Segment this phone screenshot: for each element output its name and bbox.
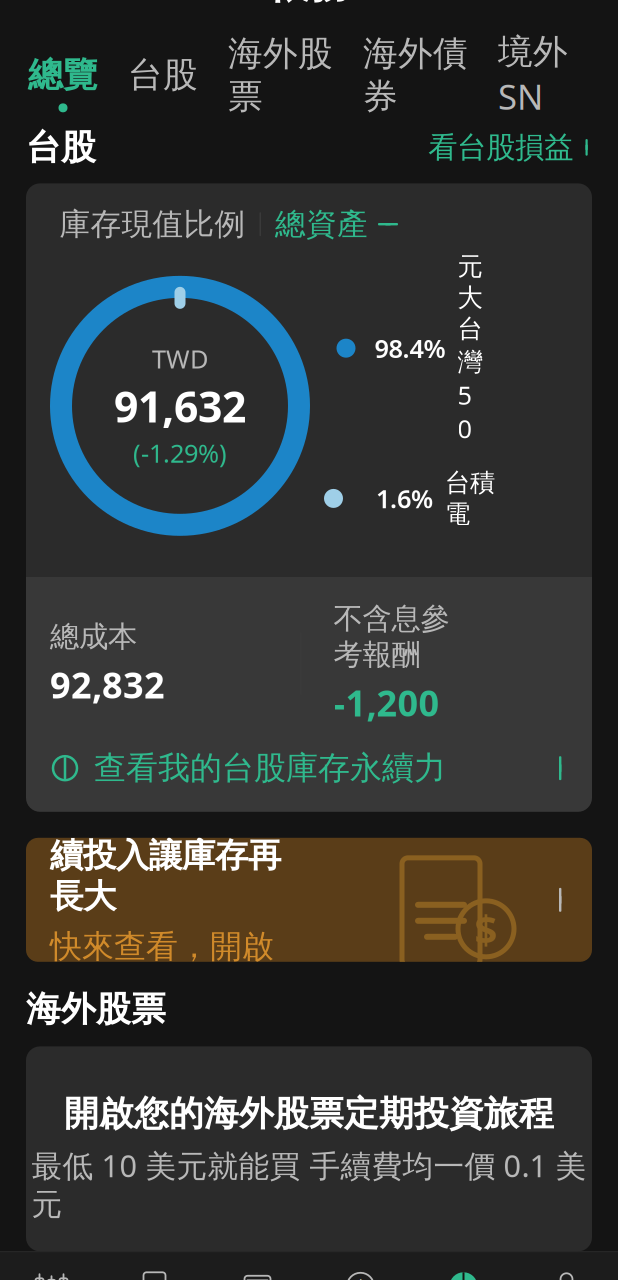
staticText: 快來查看，開啟複利計畫 xyxy=(50,927,274,1005)
staticText: 境外 SN xyxy=(498,31,568,119)
staticText: 總資產 xyxy=(275,205,368,243)
button[interactable]: $ xyxy=(206,1260,309,1280)
staticText: 庫存現值比例 xyxy=(59,205,245,243)
button[interactable]: 選股 xyxy=(103,1260,206,1280)
staticText: 1.6% xyxy=(376,482,433,515)
staticText: 總覽 xyxy=(28,54,98,96)
staticText: 92,832 xyxy=(50,661,165,708)
staticText: 帳務 xyxy=(269,0,349,9)
staticText: 總成本 xyxy=(50,619,137,655)
button[interactable]: 海外債券 xyxy=(363,32,498,134)
button[interactable]: 境外 SN xyxy=(498,31,598,135)
button[interactable]: $ xyxy=(26,838,592,962)
button[interactable]: 總覽 xyxy=(28,54,128,112)
staticText: 海外股票 xyxy=(26,988,166,1030)
staticText: 台股 xyxy=(128,54,198,96)
button[interactable]: 行情 xyxy=(0,1260,103,1280)
staticText: -1,200 xyxy=(333,679,439,726)
button[interactable]: 總資產 xyxy=(275,205,400,243)
staticText: 98.4% xyxy=(374,331,445,365)
staticText: 開啟您的海外股票定期投資旅程 xyxy=(64,1092,554,1135)
staticText: 不含息參考報酬 xyxy=(333,601,449,673)
button[interactable]: 查看我的台股庫存永續力 xyxy=(26,726,592,812)
staticText: 海外債券 xyxy=(363,32,468,118)
staticText: TWD xyxy=(152,342,208,375)
button[interactable]: 帳務 xyxy=(412,1260,515,1280)
staticText: 看台股損益 xyxy=(428,129,573,165)
staticText: 查看我的台股庫存永續力 xyxy=(94,748,446,788)
staticText: 海外股票 xyxy=(228,32,333,118)
staticText: 91,632 xyxy=(114,377,246,434)
button[interactable]: $ xyxy=(309,1260,412,1280)
button[interactable]: 我的 xyxy=(515,1260,618,1280)
staticText: $ xyxy=(355,1273,366,1280)
staticText: $ xyxy=(474,902,497,955)
staticText: 台股 xyxy=(26,126,96,169)
button[interactable]: 看台股損益 xyxy=(428,129,592,165)
staticText: (-1.29%) xyxy=(133,436,227,470)
staticText: 最低 10 美元就能買 手續費均一價 0.1 美元 xyxy=(31,1145,586,1223)
button[interactable]: 台股 xyxy=(128,54,228,112)
staticText: 股息再投資，持續投入讓庫存再長大 xyxy=(50,794,281,917)
staticText: 台積電 xyxy=(445,467,495,529)
staticText: 元大台灣 50 xyxy=(457,251,482,445)
button[interactable]: 海外股票 xyxy=(228,32,363,134)
